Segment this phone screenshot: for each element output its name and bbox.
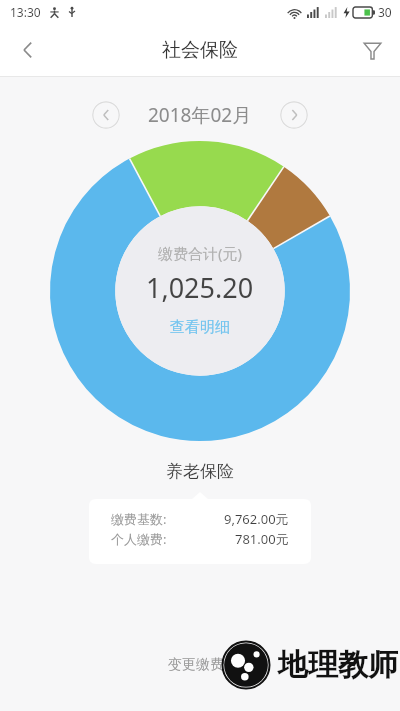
button[interactable]: Filter xyxy=(344,24,400,76)
button[interactable]: Previous month xyxy=(92,101,120,129)
staticText: 9,762.00元 xyxy=(224,510,289,528)
staticText: 变更缴费 xyxy=(168,656,224,674)
staticText: 13:30 xyxy=(10,4,41,20)
staticText: 30 xyxy=(378,4,392,20)
staticText: 1,025.20 xyxy=(146,269,254,306)
staticText: 缴费基数: xyxy=(111,510,167,528)
button[interactable]: 查看明细 xyxy=(164,316,236,339)
staticText: 781.00元 xyxy=(235,530,289,548)
staticText: 2018年02月 xyxy=(148,102,252,128)
staticText: 缴费合计(元) xyxy=(158,243,243,263)
button[interactable]: Back xyxy=(0,24,56,76)
staticText: 地理教师 xyxy=(278,646,398,684)
staticText: 社会保险 xyxy=(162,38,238,62)
staticText: 个人缴费: xyxy=(111,530,167,548)
staticText: 养老保险 xyxy=(0,461,400,482)
button[interactable]: Next month xyxy=(280,101,308,129)
staticText: 查看明细 xyxy=(170,318,230,337)
